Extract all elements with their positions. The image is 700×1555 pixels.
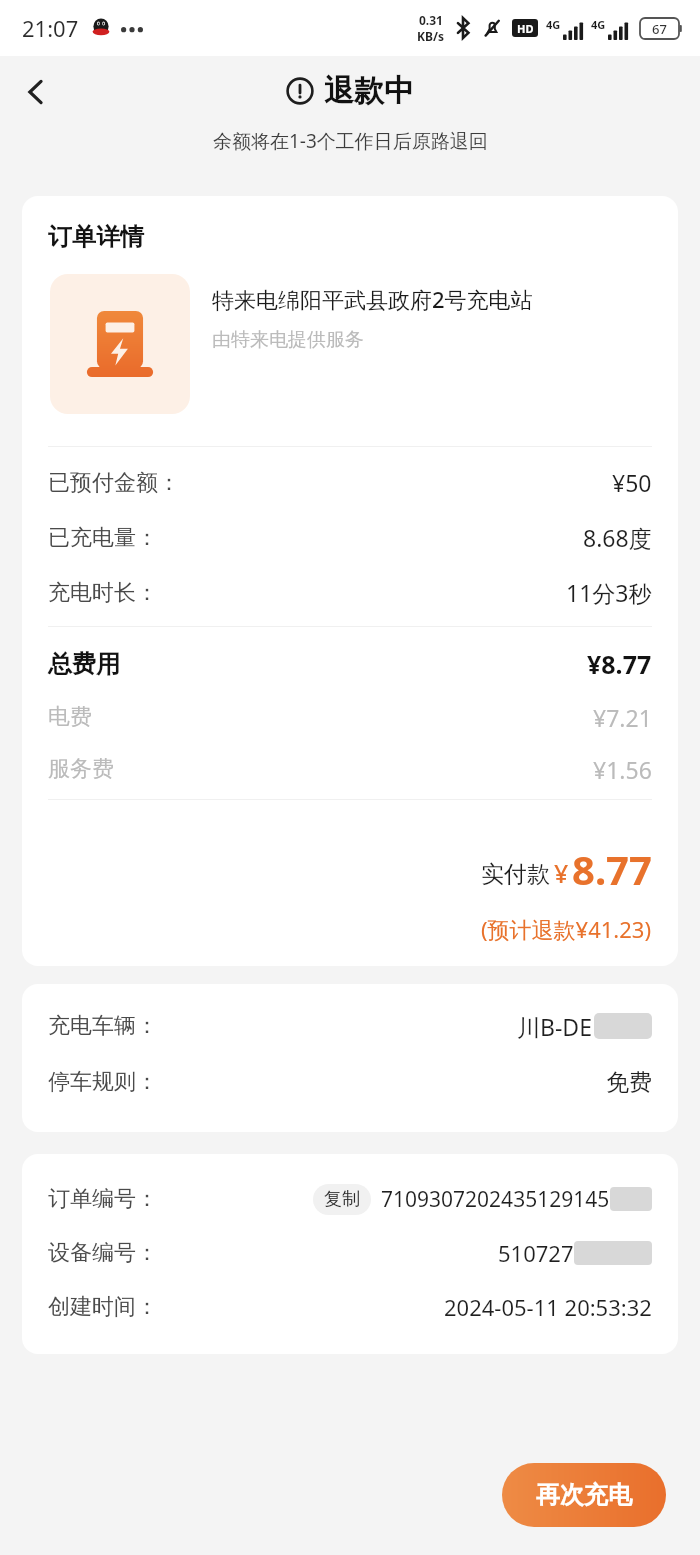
staticText: 8.77 bbox=[572, 842, 652, 896]
staticText: 订单编号： bbox=[48, 1185, 158, 1213]
staticText: 4G bbox=[591, 17, 606, 32]
staticText: 川B-DE bbox=[517, 1011, 592, 1042]
staticText: (预计退款¥41.23) bbox=[481, 914, 652, 944]
staticText: 创建时间： bbox=[48, 1293, 158, 1321]
staticText: 实付款 bbox=[481, 860, 550, 889]
staticText: 再次充电 bbox=[536, 1480, 632, 1510]
button[interactable]: 复制 bbox=[313, 1184, 371, 1215]
staticText: 免费 bbox=[606, 1068, 652, 1097]
staticText: 特来电绵阳平武县政府2号充电站 bbox=[212, 284, 533, 314]
staticText: 11分3秒 bbox=[566, 577, 652, 608]
staticText: 订单详情 bbox=[48, 222, 144, 252]
staticText: 退款中 bbox=[324, 72, 414, 110]
staticText: 67 bbox=[652, 20, 667, 38]
staticText: 充电时长： bbox=[48, 579, 158, 607]
staticText: 7109307202435129145 bbox=[381, 1185, 610, 1214]
staticText: 21:07 bbox=[22, 13, 79, 43]
staticText: ¥1.56 bbox=[593, 754, 652, 785]
staticText: 服务费 bbox=[48, 755, 114, 783]
staticText: 复制 bbox=[324, 1188, 360, 1211]
staticText: 已预付金额： bbox=[48, 469, 180, 497]
staticText: 0.31 bbox=[419, 12, 443, 28]
staticText: 余额将在1-3个工作日后原路退回 bbox=[213, 128, 488, 154]
staticText: 由特来电提供服务 bbox=[212, 328, 364, 352]
button[interactable]: Back bbox=[8, 64, 64, 120]
staticText: 8.68度 bbox=[583, 522, 652, 553]
staticText: ¥8.77 bbox=[587, 647, 652, 681]
button[interactable]: 再次充电 bbox=[502, 1463, 666, 1527]
staticText: 电费 bbox=[48, 703, 92, 731]
staticText: ¥7.21 bbox=[593, 702, 652, 733]
staticText: KB/s bbox=[417, 28, 444, 44]
staticText: ¥50 bbox=[612, 467, 652, 498]
staticText: 设备编号： bbox=[48, 1239, 158, 1267]
staticText: 4G bbox=[546, 17, 561, 32]
staticText: 停车规则： bbox=[48, 1068, 158, 1096]
staticText: HD bbox=[517, 21, 534, 36]
staticText: 已充电量： bbox=[48, 524, 158, 552]
staticText: 总费用 bbox=[48, 649, 120, 679]
staticText: 充电车辆： bbox=[48, 1012, 158, 1040]
staticText: 510727 bbox=[498, 1238, 574, 1268]
staticText: ¥ bbox=[554, 856, 569, 890]
staticText: 2024-05-11 20:53:32 bbox=[444, 1292, 652, 1322]
